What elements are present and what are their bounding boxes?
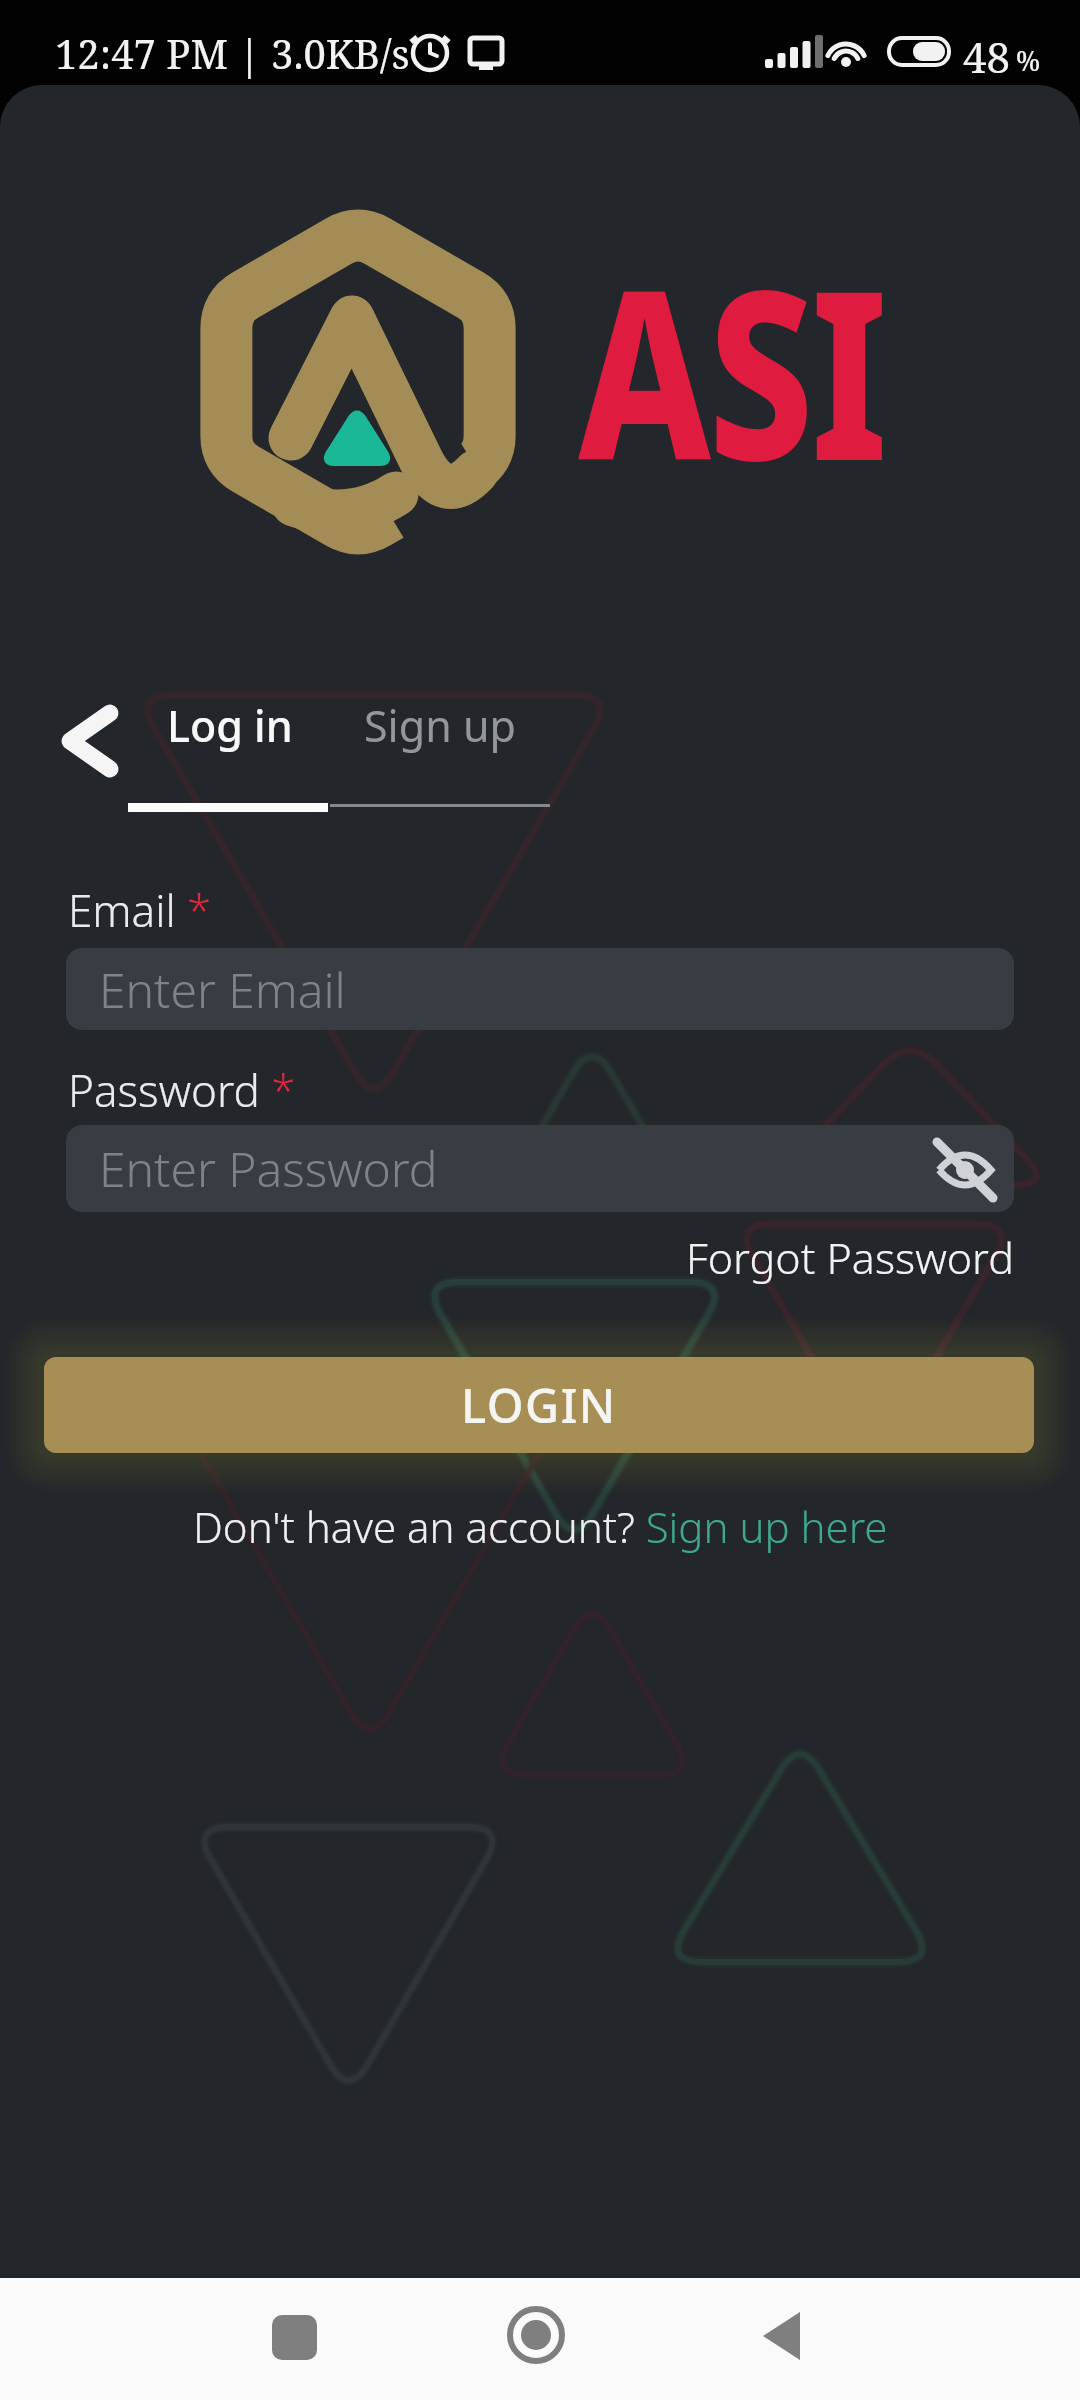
button[interactable]: Enter Password (66, 1125, 1014, 1212)
staticText: 48 (963, 28, 1010, 85)
staticText: 12:47 PM | 3.0KB/s (55, 26, 410, 80)
staticText: Sign up (364, 696, 516, 755)
staticText: Password * (68, 1060, 296, 1120)
staticText: LOGIN (461, 1373, 617, 1437)
button[interactable]: LOGIN (44, 1357, 1034, 1453)
staticText: Email * (68, 880, 212, 940)
button[interactable]: Forgot Password (686, 1228, 1014, 1287)
button[interactable] (48, 695, 128, 785)
staticText: Don't have an account? Sign up here (193, 1498, 888, 1555)
staticText: Forgot Password (686, 1228, 1014, 1287)
staticText: % (1016, 42, 1041, 79)
button[interactable] (494, 2293, 579, 2378)
button[interactable]: Sign up (350, 680, 530, 770)
button[interactable]: Don't have an account? Sign up here (193, 1498, 888, 1555)
button[interactable] (934, 1125, 1014, 1212)
button[interactable] (252, 2295, 337, 2380)
button[interactable]: Enter Email (66, 948, 1014, 1030)
staticText: Enter Email (99, 957, 346, 1022)
staticText: ASI (578, 209, 885, 529)
button[interactable] (741, 2294, 826, 2379)
button[interactable]: Log in (150, 680, 310, 770)
staticText: Enter Password (99, 1136, 438, 1201)
staticText: Log in (167, 696, 293, 755)
